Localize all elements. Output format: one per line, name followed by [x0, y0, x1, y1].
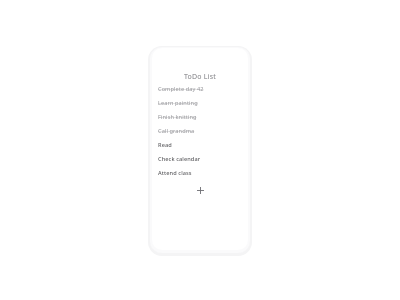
staticText: Read — [158, 141, 172, 149]
button[interactable]: Read — [152, 138, 248, 152]
button[interactable]: Check calendar — [152, 152, 248, 166]
staticText: Finish knitting — [158, 113, 197, 121]
staticText: Attend class — [158, 169, 192, 177]
staticText: Complete day 42 — [158, 85, 204, 93]
button[interactable]: Call grandma — [152, 124, 248, 138]
button[interactable]: Finish knitting — [152, 110, 248, 124]
button[interactable]: Learn painting — [152, 96, 248, 110]
button[interactable]: Complete day 42 — [152, 82, 248, 96]
staticText: Call grandma — [158, 127, 195, 135]
button[interactable]: Attend class — [152, 166, 248, 180]
staticText: Check calendar — [158, 155, 201, 163]
staticText: ToDo List — [152, 72, 248, 82]
staticText: Learn painting — [158, 99, 198, 107]
button[interactable]: Add task — [192, 182, 208, 198]
